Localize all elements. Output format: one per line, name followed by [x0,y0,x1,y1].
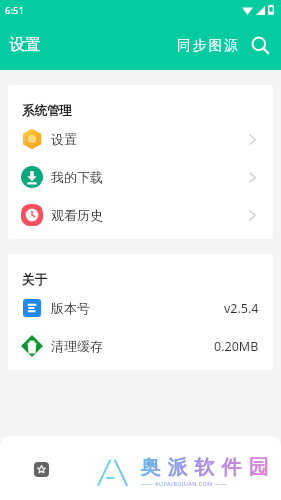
staticText: 设置 [51,131,77,147]
button[interactable]: Search [245,28,281,64]
button[interactable]: 清理缓存 [8,327,273,365]
button[interactable]: Home [34,462,49,477]
staticText: 关于 [22,272,47,288]
staticText: 我的下载 [51,169,103,185]
staticText: 清理缓存 [51,338,103,354]
staticText: 系统管理 [22,103,72,119]
staticText: 版本号 [51,300,90,316]
staticText: 设置 [9,35,41,55]
staticText: 奥派软件园 [137,455,272,480]
staticText: 0.20MB [214,338,259,355]
staticText: 观看历史 [51,207,103,223]
staticText: v2.5.4 [224,300,259,317]
button[interactable]: 观看历史 [8,196,273,234]
button[interactable]: 设置 [8,120,273,158]
button[interactable]: 同步图源 [172,27,245,64]
staticText: 6:51 [5,4,24,17]
staticText: —— AUPAIRUJUAN.COM —— [141,480,227,487]
staticText: 同步图源 [177,37,240,54]
button[interactable]: 版本号 [8,289,273,327]
button[interactable]: 我的下载 [8,158,273,196]
